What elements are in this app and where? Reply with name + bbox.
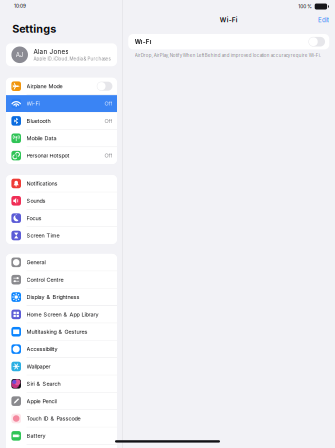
staticText: Mobile Data	[27, 135, 57, 141]
button[interactable]: Wi-Fi	[128, 34, 329, 49]
staticText: General	[27, 259, 46, 266]
staticText: Home Screen & App Library	[27, 311, 99, 318]
staticText: Off	[104, 152, 112, 159]
button[interactable]: Sounds	[6, 192, 117, 209]
staticText: Apple ID, iCloud, Media & Purchases	[33, 56, 110, 61]
staticText: Settings	[12, 22, 56, 35]
button[interactable]: Bluetooth	[6, 112, 117, 129]
staticText: Edit	[318, 16, 329, 24]
staticText: Personal Hotspot	[27, 152, 70, 159]
button[interactable]: Home Screen & App Library	[6, 306, 117, 323]
staticText: Battery	[27, 432, 46, 439]
staticText: Off	[104, 100, 112, 107]
staticText: AirDrop, AirPlay, Notify When Left Behin…	[135, 53, 321, 58]
staticText: Airplane Mode	[27, 83, 63, 89]
button[interactable]: Airplane Mode	[6, 78, 117, 95]
staticText: Alan Jones	[33, 48, 68, 56]
staticText: Wi-Fi	[135, 38, 152, 45]
button[interactable]: Focus	[6, 210, 117, 227]
staticText: AJ	[16, 51, 24, 58]
button[interactable]: Wallpaper	[6, 358, 117, 375]
staticText: Sounds	[27, 197, 46, 204]
staticText: 10:09	[14, 3, 26, 9]
button[interactable]: Siri & Search	[6, 375, 117, 392]
staticText: Siri & Search	[27, 380, 61, 387]
staticText: Control Centre	[27, 276, 64, 283]
button[interactable]: Touch ID & Passcode	[6, 410, 117, 427]
button[interactable]: Edit	[316, 14, 331, 26]
button[interactable]: Battery	[6, 427, 117, 444]
button[interactable]: AJ	[6, 43, 117, 66]
staticText: Wallpaper	[27, 363, 51, 370]
staticText: Bluetooth	[27, 118, 51, 124]
button[interactable]: Multitasking & Gestures	[6, 323, 117, 340]
staticText: Wi-Fi	[27, 100, 40, 107]
button[interactable]: General	[6, 254, 117, 271]
button[interactable]: Mobile Data	[6, 130, 117, 147]
button[interactable]: Notifications	[6, 175, 117, 192]
button[interactable]: Screen Time	[6, 227, 117, 244]
button[interactable]: Wi-Fi	[6, 95, 117, 112]
staticText: Apple Pencil	[27, 398, 57, 404]
staticText: Display & Brightness	[27, 294, 80, 300]
staticText: Accessibility	[27, 346, 58, 352]
staticText: Screen Time	[27, 232, 60, 239]
button[interactable]: Accessibility	[6, 341, 117, 358]
button[interactable]: Control Centre	[6, 271, 117, 288]
staticText: Focus	[27, 215, 42, 221]
staticText: Multitasking & Gestures	[27, 328, 88, 335]
staticText: Wi-Fi	[220, 16, 238, 24]
button[interactable]: Personal Hotspot	[6, 147, 117, 164]
button[interactable]: Apple Pencil	[6, 393, 117, 410]
staticText: Off	[104, 118, 112, 124]
staticText: 100 %	[298, 4, 312, 9]
staticText: Touch ID & Passcode	[27, 415, 81, 422]
button[interactable]: Display & Brightness	[6, 289, 117, 305]
staticText: Notifications	[27, 180, 58, 187]
